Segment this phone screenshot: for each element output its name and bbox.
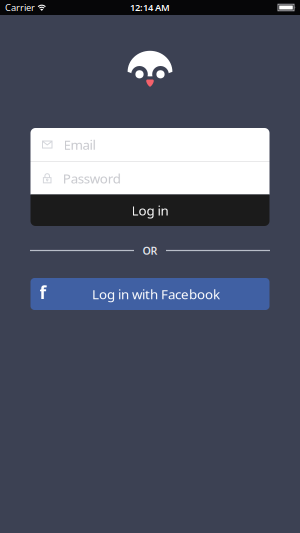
button[interactable]: Log in [30,194,269,226]
button[interactable]: f [30,278,269,310]
staticText: Log in with Facebook [92,285,220,303]
staticText: OR [142,243,157,258]
button[interactable]: Password [30,162,269,194]
staticText: Log in [131,201,168,219]
button[interactable]: Email [30,128,269,161]
staticText: 12:14 AM [130,1,170,14]
staticText: f [39,281,46,304]
staticText: Password [63,169,121,187]
staticText: Email [63,136,95,153]
staticText: Carrier [5,1,35,14]
